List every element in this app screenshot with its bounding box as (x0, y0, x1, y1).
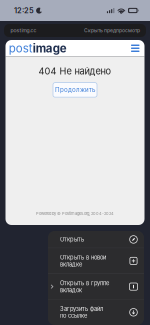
button[interactable]: Открыть в группе вкладок (48, 274, 144, 299)
button[interactable]: Menu (131, 44, 139, 52)
button[interactable]: Скрыть предпросмотр (84, 27, 140, 33)
staticText: post (9, 41, 33, 55)
button[interactable]: Загрузить файл по ссылке (48, 300, 144, 325)
staticText: Загрузить файл по ссылке (60, 305, 103, 319)
button[interactable]: Открыть (48, 231, 144, 248)
staticText: 404 Не найдено (38, 65, 111, 77)
staticText: Скрыть предпросмотр (84, 27, 140, 33)
staticText: postimg.cc (10, 27, 36, 33)
staticText: Powered by © Postimages.org, 2004-2024 (36, 211, 114, 216)
staticText: 12:25 (14, 6, 34, 15)
staticText: Открыть в новой вкладке (60, 254, 106, 268)
button[interactable]: Продолжить (53, 83, 97, 97)
staticText: Открыть в группе вкладок (60, 280, 109, 294)
staticText: Продолжить (55, 86, 95, 94)
staticText: image (33, 41, 67, 55)
button[interactable]: Открыть в новой вкладке (48, 248, 144, 273)
staticText: Открыть (60, 236, 84, 243)
